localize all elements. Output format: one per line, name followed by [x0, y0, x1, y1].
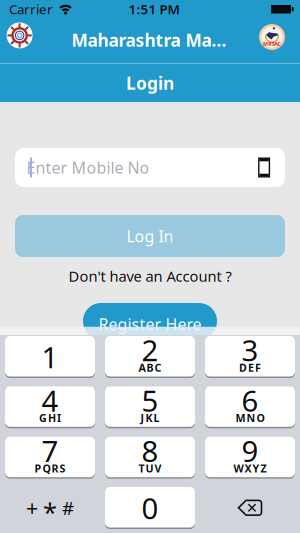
staticText: #	[62, 495, 74, 520]
button[interactable]: 9	[205, 436, 295, 479]
staticText: 5	[141, 381, 158, 420]
staticText: 8	[141, 431, 158, 470]
button[interactable]: 0	[105, 486, 195, 529]
staticText: D E F	[239, 360, 261, 375]
staticText: 9	[241, 431, 258, 470]
staticText: 1:51 PM	[128, 0, 179, 18]
staticText: +	[26, 494, 38, 522]
staticText: T U V	[138, 461, 161, 475]
staticText: 7	[41, 431, 58, 470]
staticText: Login	[126, 71, 174, 94]
staticText: 1	[41, 337, 58, 376]
button[interactable]: 6	[205, 386, 295, 428]
staticText: M N O	[235, 411, 264, 425]
staticText: 3	[241, 330, 258, 369]
staticText: Carrier	[9, 0, 53, 18]
staticText: 4	[41, 381, 58, 420]
staticText: A B C	[138, 360, 161, 375]
staticText: 2	[141, 330, 158, 369]
button[interactable]: 8	[105, 436, 195, 479]
button[interactable]: 2	[105, 335, 195, 378]
button[interactable]: Enter Mobile No	[15, 148, 285, 187]
button[interactable]: Symbols	[5, 487, 95, 528]
staticText: Register Here	[98, 313, 201, 335]
button[interactable]: 4	[5, 386, 95, 428]
staticText: Maharashtra Ma…	[71, 28, 226, 51]
staticText: *	[43, 495, 57, 528]
staticText: Enter Mobile No	[26, 157, 149, 178]
staticText: Don't have an Account ?	[68, 266, 231, 286]
staticText: MRSAC	[258, 38, 285, 49]
button[interactable]: 1	[5, 335, 95, 378]
button[interactable]: Register Here	[83, 303, 217, 339]
staticText: G H I	[39, 411, 61, 425]
button[interactable]: Log In	[15, 215, 285, 257]
staticText: 0	[141, 488, 158, 527]
button[interactable]: 7	[5, 436, 95, 479]
staticText: Log In	[126, 225, 173, 247]
button[interactable]: 5	[105, 386, 195, 428]
button[interactable]: Delete	[205, 487, 295, 528]
staticText: 6	[241, 381, 258, 420]
button[interactable]: 3	[205, 335, 295, 378]
staticText: J K L	[140, 411, 159, 425]
staticText: W X Y Z	[233, 461, 266, 475]
staticText: P Q R S	[34, 461, 65, 475]
